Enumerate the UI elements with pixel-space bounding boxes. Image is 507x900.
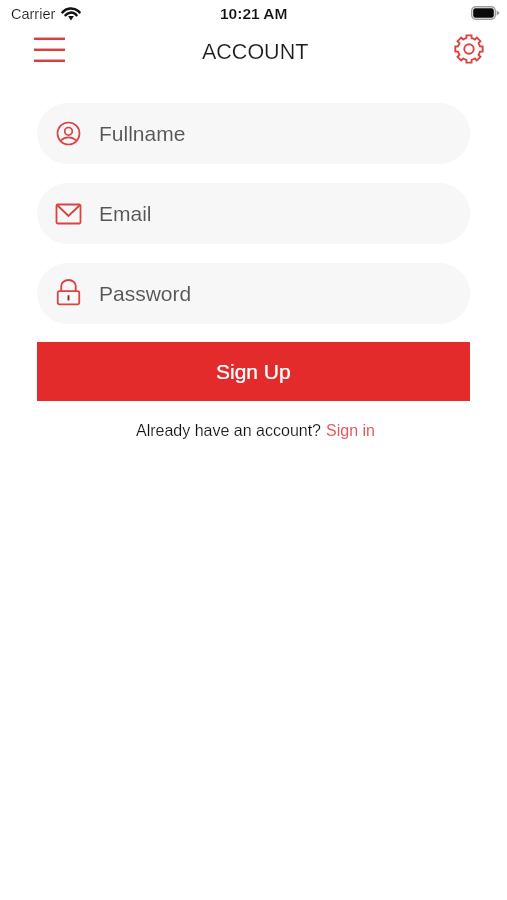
staticText: Password — [99, 282, 192, 305]
button[interactable]: Email — [37, 183, 470, 244]
button[interactable]: Fullname — [37, 103, 470, 164]
button[interactable]: Sign Up — [37, 342, 470, 401]
staticText: Sign Up — [216, 360, 291, 383]
staticText: Carrier — [11, 6, 56, 22]
staticText: 10:21 AM — [220, 5, 288, 22]
button[interactable]: Settings — [453, 33, 485, 65]
staticText: ACCOUNT — [202, 40, 309, 64]
button[interactable]: Password — [37, 263, 470, 324]
button[interactable]: Menu — [28, 32, 70, 66]
staticText: Email — [99, 202, 152, 225]
staticText: Fullname — [99, 122, 186, 145]
staticText: Already have an account? — [136, 422, 326, 440]
button[interactable]: Sign in — [326, 422, 375, 440]
